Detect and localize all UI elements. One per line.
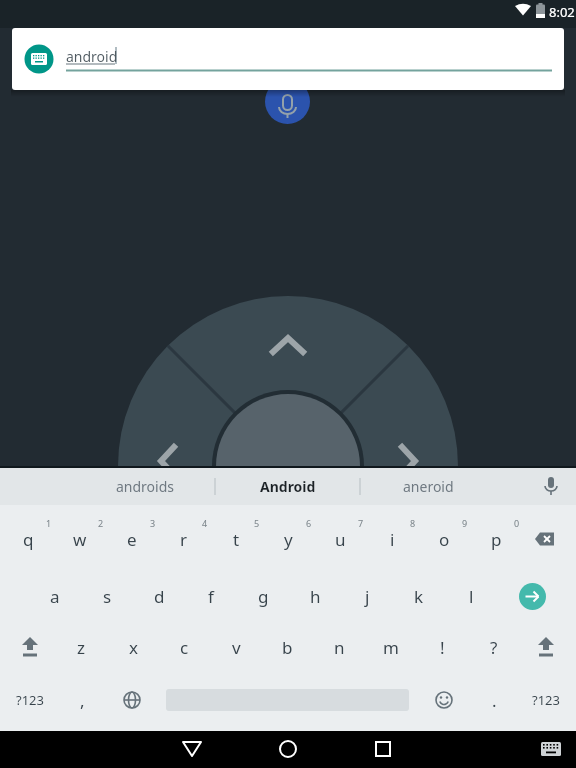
staticText: 8:02 xyxy=(549,3,575,21)
staticText: k xyxy=(414,585,424,608)
staticText: 0 xyxy=(514,517,520,529)
button[interactable]: android xyxy=(12,28,564,90)
staticText: ?123 xyxy=(532,691,560,709)
staticText: v xyxy=(232,636,241,659)
button[interactable]: k xyxy=(393,572,445,620)
staticText: 9 xyxy=(462,517,468,529)
staticText: j xyxy=(365,585,370,608)
staticText: 8 xyxy=(410,517,416,529)
button[interactable]: h xyxy=(289,572,341,620)
button[interactable]: w xyxy=(54,515,106,563)
staticText: u xyxy=(335,528,346,551)
button[interactable]: ! xyxy=(416,623,468,671)
staticText: android xyxy=(66,47,118,66)
button[interactable]: z xyxy=(55,623,107,671)
button[interactable]: y xyxy=(262,515,314,563)
staticText: y xyxy=(284,528,293,551)
staticText: s xyxy=(103,585,112,608)
button[interactable]: v xyxy=(210,623,262,671)
staticText: c xyxy=(180,636,189,659)
button[interactable]: c xyxy=(158,623,210,671)
staticText: e xyxy=(127,528,137,551)
staticText: ? xyxy=(490,636,498,659)
button[interactable]: x xyxy=(107,623,159,671)
button[interactable]: a xyxy=(29,572,81,620)
button[interactable]: d xyxy=(133,572,185,620)
button[interactable]: , xyxy=(56,676,108,724)
button[interactable]: u xyxy=(314,515,366,563)
staticText: a xyxy=(50,585,60,608)
staticText: 4 xyxy=(202,517,208,529)
button[interactable] xyxy=(519,583,546,610)
staticText: g xyxy=(258,585,269,608)
button[interactable]: m xyxy=(365,623,417,671)
staticText: b xyxy=(282,636,293,659)
button[interactable]: ?123 xyxy=(520,676,572,724)
button[interactable]: b xyxy=(261,623,313,671)
button[interactable]: i xyxy=(366,515,418,563)
staticText: , xyxy=(80,689,85,712)
button[interactable]: o xyxy=(418,515,470,563)
staticText: o xyxy=(439,528,450,551)
staticText: aneroid xyxy=(403,477,454,496)
button[interactable]: Android xyxy=(233,468,343,505)
staticText: f xyxy=(208,585,214,608)
button[interactable] xyxy=(265,79,310,124)
staticText: m xyxy=(383,636,399,659)
staticText: 2 xyxy=(98,517,104,529)
button[interactable] xyxy=(258,731,318,768)
button[interactable]: e xyxy=(106,515,158,563)
staticText: Android xyxy=(260,477,316,496)
staticText: d xyxy=(154,585,165,608)
button[interactable]: g xyxy=(237,572,289,620)
button[interactable]: . xyxy=(468,676,520,724)
staticText: . xyxy=(492,689,497,712)
button[interactable]: f xyxy=(185,572,237,620)
button[interactable]: n xyxy=(313,623,365,671)
staticText: ! xyxy=(440,636,445,659)
staticText: l xyxy=(469,585,474,608)
staticText: h xyxy=(310,585,321,608)
staticText: z xyxy=(77,636,85,659)
staticText: r xyxy=(180,528,188,551)
button[interactable]: p xyxy=(470,515,522,563)
staticText: i xyxy=(390,528,395,551)
staticText: 5 xyxy=(254,517,260,529)
staticText: q xyxy=(23,528,34,551)
button[interactable]: aneroid xyxy=(373,468,483,505)
staticText: w xyxy=(73,528,87,551)
button[interactable]: ? xyxy=(468,623,520,671)
staticText: 6 xyxy=(306,517,312,529)
staticText: 7 xyxy=(358,517,364,529)
button[interactable]: j xyxy=(341,572,393,620)
staticText: 3 xyxy=(150,517,156,529)
button[interactable] xyxy=(162,731,222,768)
staticText: ?123 xyxy=(16,691,44,709)
staticText: n xyxy=(334,636,345,659)
button[interactable]: androids xyxy=(90,468,200,505)
staticText: x xyxy=(129,636,138,659)
button[interactable]: l xyxy=(445,572,497,620)
staticText: t xyxy=(233,528,240,551)
staticText: 1 xyxy=(46,517,52,529)
button[interactable]: ?123 xyxy=(4,676,56,724)
button[interactable]: q xyxy=(2,515,54,563)
button[interactable]: t xyxy=(210,515,262,563)
button[interactable] xyxy=(353,731,413,768)
staticText: p xyxy=(491,528,502,551)
staticText: androids xyxy=(116,477,175,496)
button[interactable]: s xyxy=(81,572,133,620)
button[interactable]: r xyxy=(158,515,210,563)
